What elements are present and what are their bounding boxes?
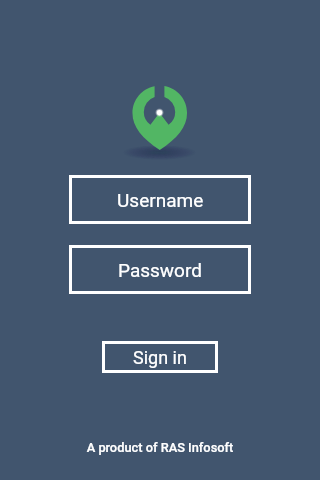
staticText: A product of RAS Infosoft — [0, 440, 320, 455]
staticText: Sign in — [133, 347, 187, 368]
button[interactable]: Sign in — [102, 341, 218, 373]
other: RAS Infosoft logo — [110, 80, 210, 162]
button[interactable]: Username — [69, 175, 251, 224]
button[interactable]: Password — [69, 245, 251, 294]
staticText: Username — [117, 189, 204, 211]
staticText: Password — [118, 259, 202, 281]
